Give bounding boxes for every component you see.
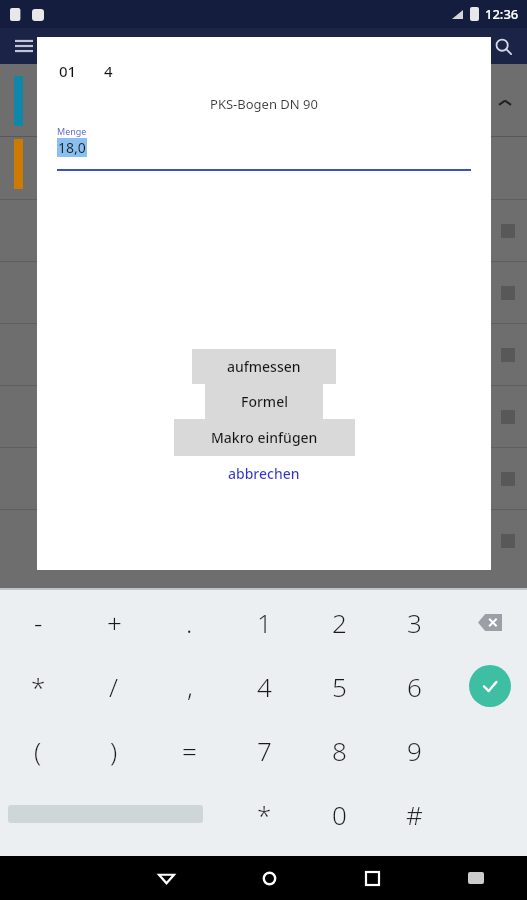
staticText: aufmessen	[227, 357, 301, 376]
button[interactable]: 3	[377, 590, 452, 654]
staticText: Formel	[241, 392, 288, 411]
button[interactable]: +	[76, 590, 152, 654]
staticText: 2	[332, 605, 347, 640]
staticText: 0	[332, 797, 347, 832]
staticText: *	[257, 797, 272, 832]
button[interactable]: 4	[227, 654, 302, 718]
button[interactable]: abbrechen	[37, 464, 491, 483]
button[interactable]: Home	[218, 871, 321, 886]
button[interactable]: Enter	[469, 665, 511, 707]
button[interactable]: 6	[377, 654, 452, 718]
button[interactable]: (	[0, 718, 76, 782]
button[interactable]: Search	[489, 32, 517, 60]
staticText: abbrechen	[228, 464, 300, 483]
button[interactable]: 2	[302, 590, 377, 654]
staticText: .	[186, 605, 193, 640]
staticText: /	[109, 669, 119, 704]
button[interactable]: #	[377, 782, 452, 846]
staticText: 18,0	[58, 138, 86, 157]
button[interactable]: Formel	[205, 384, 323, 419]
staticText: +	[107, 605, 122, 640]
staticText: )	[110, 733, 118, 768]
staticText: 3	[407, 605, 422, 640]
staticText: =	[182, 733, 197, 768]
staticText: ,	[187, 669, 193, 704]
staticText: *	[31, 669, 46, 704]
staticText: 4	[104, 61, 113, 81]
button[interactable]: Menu	[10, 32, 38, 60]
staticText: 4	[257, 669, 272, 704]
button[interactable]: -	[0, 590, 76, 654]
staticText: 5	[332, 669, 347, 704]
staticText: 8	[332, 733, 347, 768]
staticText: 9	[407, 733, 422, 768]
button[interactable]: )	[76, 718, 152, 782]
button[interactable]: *	[227, 782, 302, 846]
button[interactable]: .	[152, 590, 227, 654]
staticText: -	[34, 605, 43, 640]
button[interactable]: Recents	[321, 872, 424, 885]
button[interactable]: *	[0, 654, 76, 718]
button[interactable]: 9	[377, 718, 452, 782]
staticText: #	[406, 797, 423, 832]
staticText: PKS-Bogen DN 90	[37, 95, 491, 113]
button[interactable]: 1	[227, 590, 302, 654]
staticText: 1	[257, 605, 272, 640]
staticText: Menge	[57, 125, 87, 137]
button[interactable]: 8	[302, 718, 377, 782]
button[interactable]: 7	[227, 718, 302, 782]
staticText: 7	[257, 733, 272, 768]
button[interactable]: Back	[115, 871, 218, 886]
button[interactable]: ,	[152, 654, 227, 718]
staticText: 6	[407, 669, 422, 704]
button[interactable]: Keyboard	[424, 872, 527, 884]
button[interactable]: aufmessen	[192, 349, 336, 384]
button[interactable]: =	[152, 718, 227, 782]
button[interactable]: 5	[302, 654, 377, 718]
staticText: (	[34, 733, 42, 768]
button[interactable]: Makro einfügen	[174, 419, 355, 456]
staticText: 01	[59, 61, 77, 81]
staticText: 12:36	[485, 5, 519, 23]
button[interactable]: /	[76, 654, 152, 718]
button[interactable]: 0	[302, 782, 377, 846]
staticText: Makro einfügen	[211, 428, 318, 447]
button[interactable]: Backspace	[475, 607, 505, 637]
